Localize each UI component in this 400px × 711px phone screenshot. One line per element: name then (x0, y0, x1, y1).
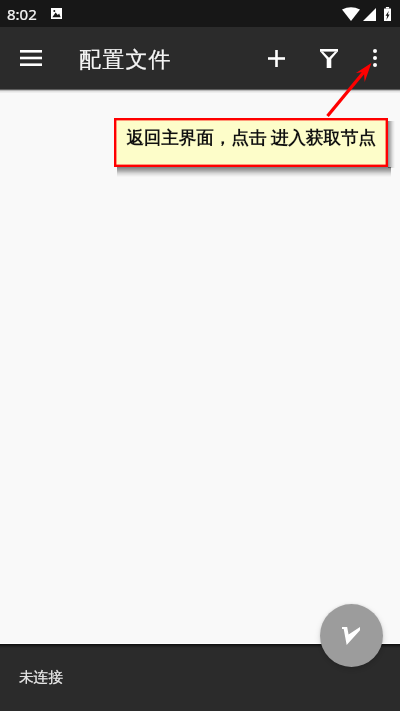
staticText: 8:02 (7, 4, 37, 24)
button[interactable]: Add (254, 36, 298, 80)
button[interactable]: More options (355, 38, 395, 78)
staticText: 配置文件 (79, 46, 172, 74)
button[interactable]: Filter (307, 36, 351, 80)
button[interactable]: 未连接 (0, 643, 400, 711)
button[interactable]: Connect (320, 604, 383, 667)
staticText: 未连接 (19, 668, 63, 686)
button[interactable]: 返回主界面，点击 进入获取节点 (114, 118, 388, 167)
button[interactable]: Navigation menu (10, 37, 52, 79)
staticText: 返回主界面，点击 进入获取节点 (126, 125, 376, 149)
